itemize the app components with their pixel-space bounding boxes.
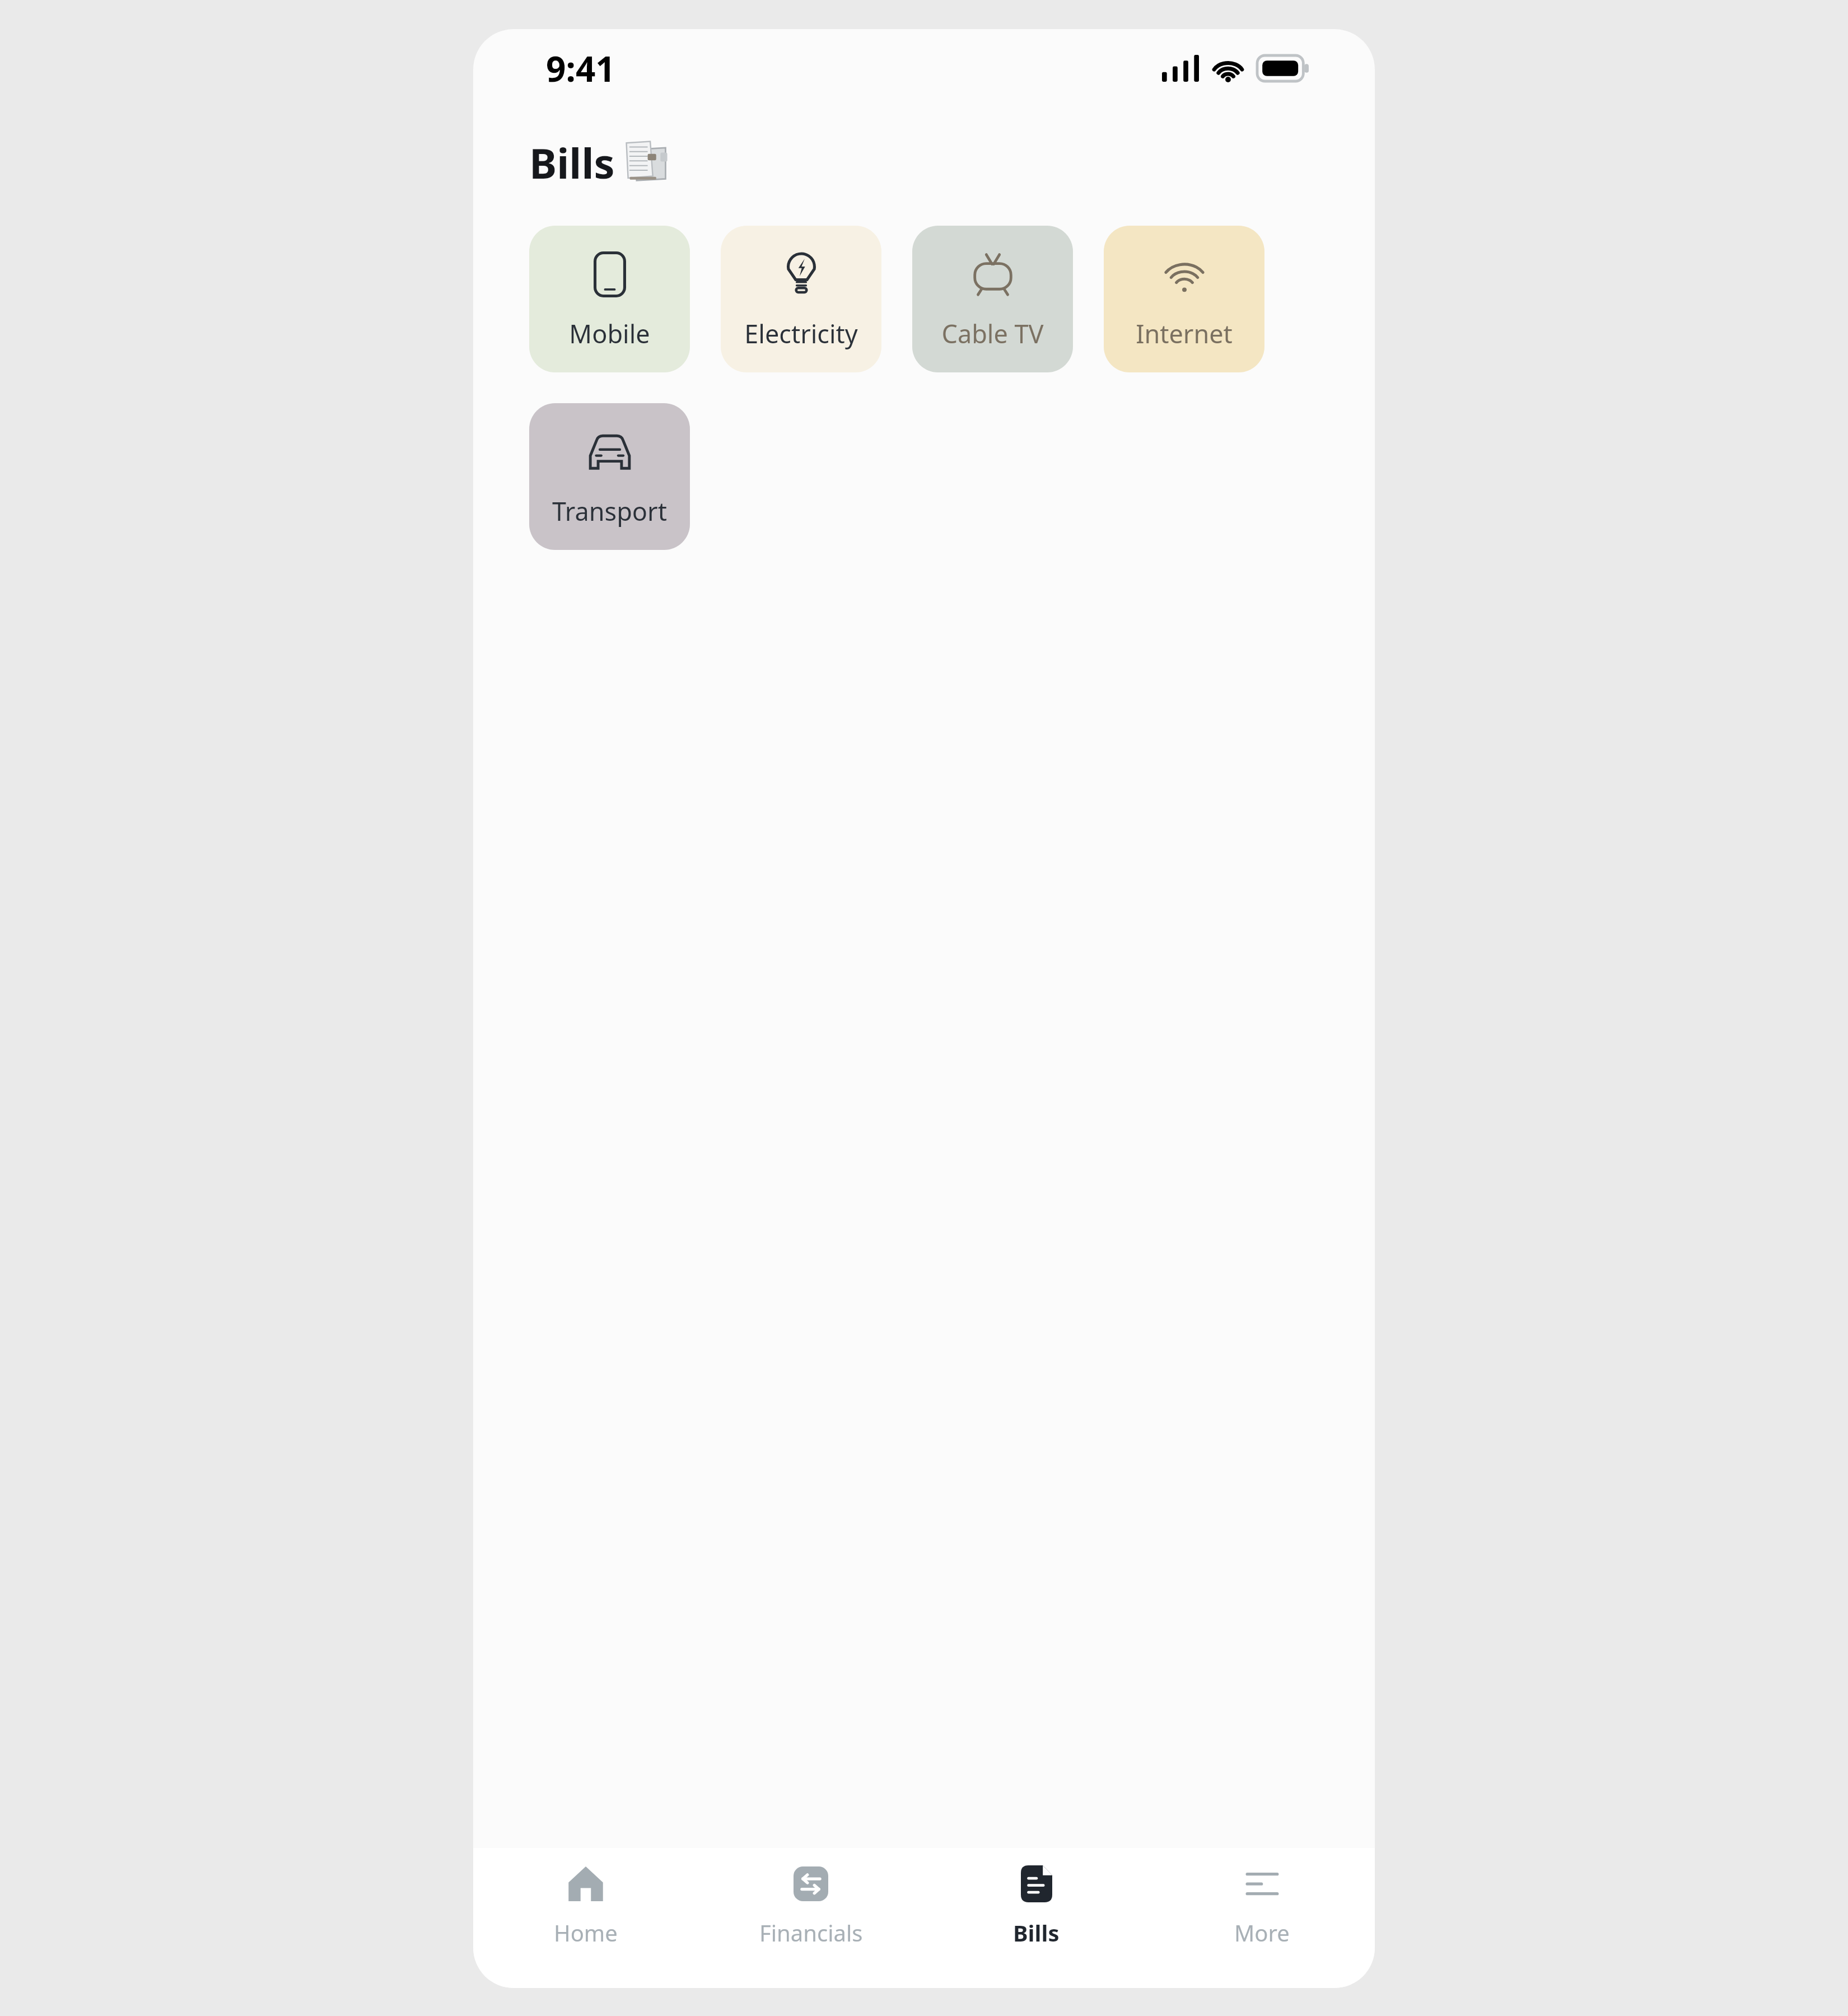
button[interactable]: Internet [1104,226,1264,372]
staticText: Cable TV [941,316,1044,351]
staticText: Transport [552,494,667,528]
staticText: Mobile [569,316,650,351]
button[interactable]: Mobile [529,226,690,372]
staticText: Bills [529,134,615,191]
staticText: Electricity [744,316,858,351]
staticText: Bills [1013,1917,1060,1948]
button[interactable]: Financials [698,1848,923,1988]
button[interactable]: Cable TV [912,226,1073,372]
staticText: Home [554,1917,618,1948]
button[interactable]: More [1149,1848,1375,1988]
staticText: More [1234,1917,1290,1948]
staticText: Internet [1136,316,1233,351]
button[interactable]: Bills [923,1848,1149,1988]
button[interactable]: Transport [529,403,690,550]
button[interactable]: Home [473,1848,698,1988]
staticText: 9:41 [546,45,615,92]
button[interactable]: Electricity [721,226,881,372]
staticText: Financials [759,1917,863,1948]
